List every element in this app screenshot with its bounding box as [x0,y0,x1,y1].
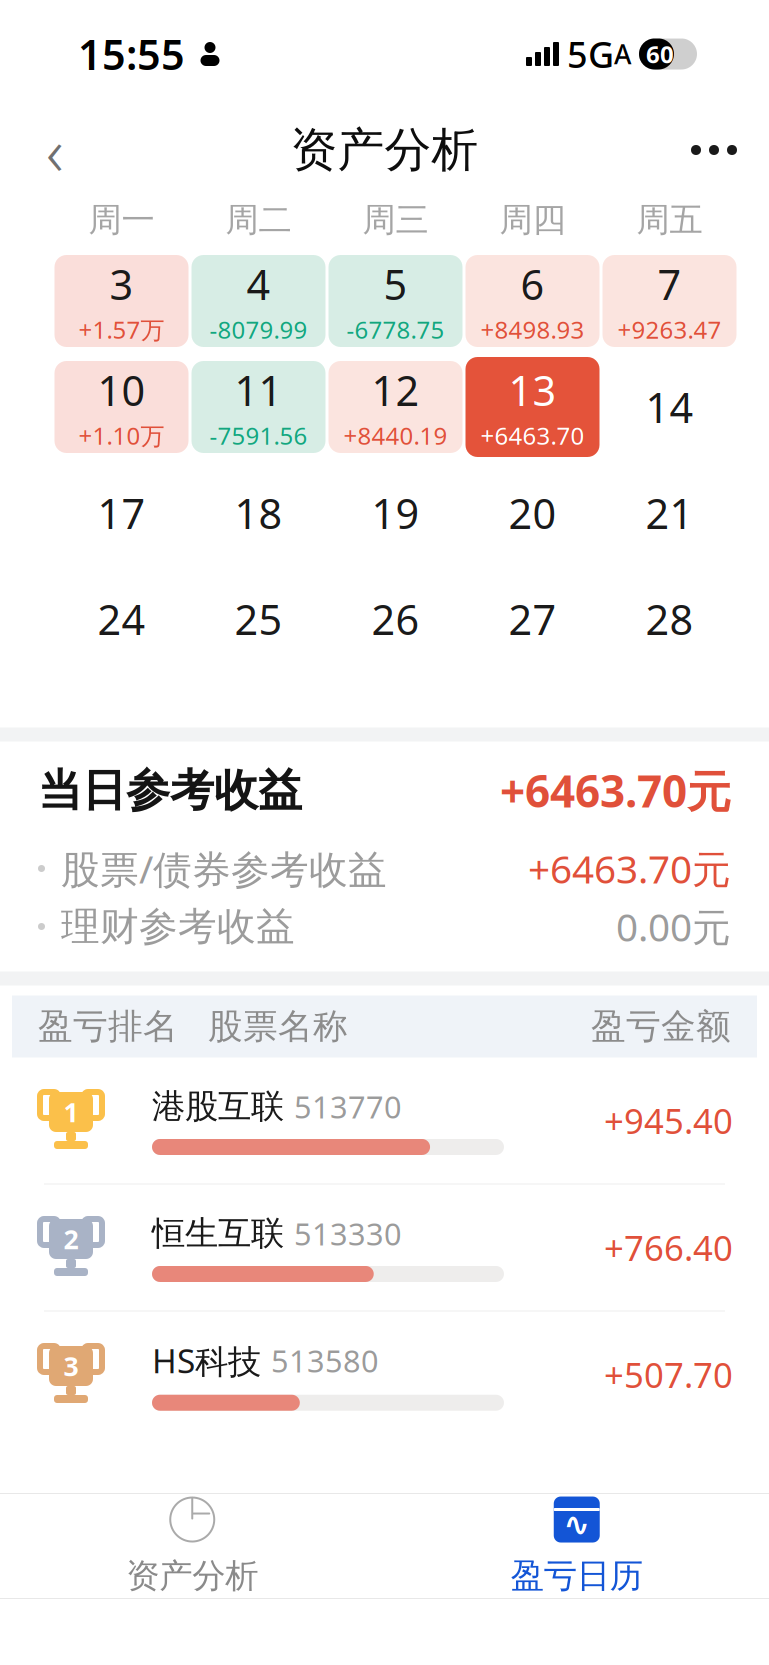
button[interactable]: 13 [464,354,601,460]
staticText: 股票/债券参考收益 [61,843,387,894]
button[interactable]: 3 [53,248,190,354]
staticText: 3 [109,257,133,311]
staticText: +6463.70元 [528,843,731,894]
button[interactable]: 27 [464,566,601,672]
staticText: -7591.56 [209,419,307,451]
button[interactable]: ∿ [384,1494,769,1598]
button[interactable]: 21 [601,460,738,566]
button[interactable]: 1 [0,1057,769,1183]
staticText: +6463.70 [480,419,584,451]
staticText: 1 [63,1094,78,1130]
staticText: 19 [371,486,419,540]
staticText: 14 [645,380,693,434]
button[interactable]: 14 [601,354,738,460]
staticText: 17 [97,486,145,540]
staticText: 513770 [294,1086,402,1127]
staticText: -8079.99 [209,313,307,345]
staticText: 4 [246,257,270,311]
staticText: 周二 [225,199,291,240]
staticText: 20 [508,486,556,540]
staticText: 资产分析 [126,1555,258,1596]
staticText: 513580 [271,1340,379,1381]
button[interactable]: 5 [327,248,464,354]
button[interactable]: 3 [0,1311,769,1437]
staticText: 13 [508,363,556,417]
staticText: 盈亏日历 [511,1555,643,1596]
staticText: ∿ [563,1506,590,1543]
staticText: +8498.93 [480,313,584,345]
staticText: 3 [63,1348,78,1384]
button[interactable]: 18 [190,460,327,566]
button[interactable]: Back [0,112,110,188]
staticText: 24 [97,592,145,646]
staticText: 盈亏金额 [591,1005,731,1048]
staticText: +507.70 [604,1351,733,1397]
staticText: 12 [371,363,419,417]
button[interactable]: 25 [190,566,327,672]
button[interactable]: 2 [0,1184,769,1310]
staticText: 26 [371,592,419,646]
staticText: 周一 [88,199,154,240]
staticText: 11 [234,363,282,417]
staticText: +1.57万 [78,313,164,345]
button[interactable]: 6 [464,248,601,354]
button[interactable]: 24 [53,566,190,672]
staticText: 15:55 [78,27,185,81]
button[interactable]: 20 [464,460,601,566]
staticText: 资产分析 [290,121,478,179]
staticText: +945.40 [604,1097,733,1143]
staticText: ‹ [46,106,64,194]
button[interactable]: 28 [601,566,738,672]
staticText: 7 [657,257,681,311]
staticText: 25 [234,592,282,646]
staticText: 5G [567,30,614,78]
staticText: 周五 [636,199,702,240]
button[interactable]: 11 [190,354,327,460]
staticText: 周四 [499,199,565,240]
button[interactable]: 17 [53,460,190,566]
staticText: 6 [520,257,544,311]
staticText: 21 [645,486,693,540]
staticText: +6463.70元 [500,761,731,820]
staticText: +766.40 [604,1224,733,1270]
staticText: 理财参考收益 [61,903,295,950]
staticText: 恒生互联 [152,1213,284,1254]
button[interactable]: 10 [53,354,190,460]
button[interactable]: 26 [327,566,464,672]
staticText: 60 [646,38,674,70]
staticText: -6778.75 [346,313,444,345]
button[interactable]: More [659,112,769,188]
staticText: 28 [645,592,693,646]
staticText: 27 [508,592,556,646]
staticText: 股票名称 [208,1005,348,1048]
staticText: A [614,36,631,72]
staticText: 5 [383,257,407,311]
staticText: 10 [97,363,145,417]
staticText: +8440.19 [343,419,447,451]
button[interactable]: 12 [327,354,464,460]
button[interactable]: 7 [601,248,738,354]
staticText: 周三 [362,199,428,240]
staticText: HS科技 [152,1338,261,1383]
staticText: 盈亏排名 [38,1005,178,1048]
staticText: 513330 [294,1213,402,1254]
staticText: 18 [234,486,282,540]
button[interactable]: 19 [327,460,464,566]
staticText: 2 [63,1221,78,1257]
staticText: 当日参考收益 [38,763,302,817]
staticText: 港股互联 [152,1086,284,1127]
staticText: +9263.47 [617,313,721,345]
button[interactable]: 资产分析 [0,1494,384,1598]
staticText: 0.00元 [616,901,731,952]
staticText: +1.10万 [78,419,164,451]
button[interactable]: 4 [190,248,327,354]
